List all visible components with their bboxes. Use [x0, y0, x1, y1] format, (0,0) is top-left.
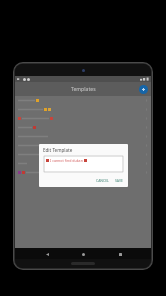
- button[interactable]: I cannot find dukan: [44, 156, 123, 172]
- button[interactable]: Add template: [139, 85, 148, 94]
- button[interactable]: Home: [78, 249, 88, 259]
- button[interactable]: CANCEL: [95, 177, 110, 184]
- staticText: Templates: [71, 86, 96, 93]
- button[interactable]: [15, 168, 151, 177]
- button[interactable]: [15, 123, 151, 132]
- button[interactable]: [15, 141, 151, 150]
- button[interactable]: Back: [42, 249, 52, 259]
- button[interactable]: [15, 96, 151, 105]
- staticText: CANCEL: [96, 178, 109, 183]
- button[interactable]: Recents: [115, 249, 125, 259]
- button[interactable]: [15, 159, 151, 168]
- staticText: Edit Template: [43, 147, 73, 153]
- button[interactable]: [15, 150, 151, 159]
- staticText: SAVE: [115, 178, 123, 183]
- staticText: I cannot find dukan: [50, 158, 83, 163]
- button[interactable]: [15, 105, 151, 114]
- button[interactable]: SAVE: [114, 177, 124, 184]
- button[interactable]: [15, 114, 151, 123]
